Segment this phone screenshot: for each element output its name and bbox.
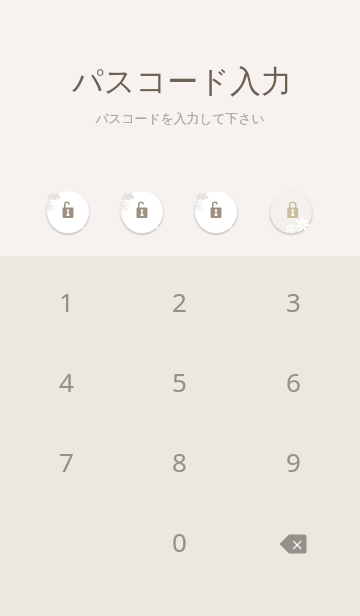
- button[interactable]: 4: [28, 351, 104, 411]
- staticText: 5: [172, 364, 187, 399]
- staticText: 1: [59, 284, 74, 319]
- staticText: 3: [286, 284, 301, 319]
- button[interactable]: Backspace: [255, 514, 331, 574]
- staticText: 8: [172, 444, 187, 479]
- button[interactable]: 2: [141, 271, 217, 331]
- other: Digit entered: [114, 184, 170, 240]
- button[interactable]: 9: [255, 431, 331, 491]
- staticText: 6: [286, 364, 301, 399]
- other: Digit entered: [188, 184, 244, 240]
- staticText: パスコードを入力して下さい: [95, 111, 265, 127]
- button[interactable]: 6: [255, 351, 331, 411]
- button[interactable]: 5: [141, 351, 217, 411]
- other: Digit not entered: [263, 184, 319, 240]
- other: Backspace: [276, 531, 310, 557]
- button[interactable]: 3: [255, 271, 331, 331]
- button[interactable]: 8: [141, 431, 217, 491]
- staticText: パスコード入力: [72, 62, 292, 101]
- staticText: 7: [59, 444, 74, 479]
- button[interactable]: 1: [28, 271, 104, 331]
- button[interactable]: 0: [141, 511, 217, 571]
- other: Digit entered: [40, 184, 96, 240]
- staticText: 4: [59, 364, 74, 399]
- staticText: 0: [172, 524, 187, 559]
- staticText: 2: [172, 284, 187, 319]
- staticText: 9: [286, 444, 301, 479]
- button[interactable]: 7: [28, 431, 104, 491]
